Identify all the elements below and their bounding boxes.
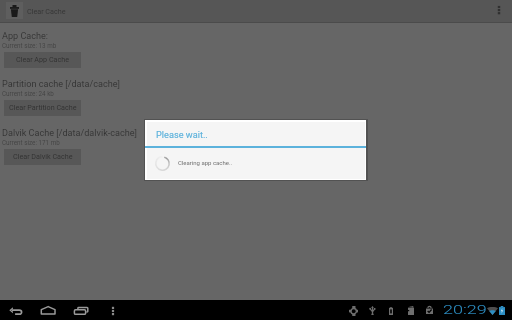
button[interactable]: Clear App Cache	[4, 52, 81, 68]
staticText: Clear Dalvik Cache	[13, 152, 73, 160]
button[interactable]: More options	[489, 1, 509, 21]
staticText: Current size: 24 kb	[2, 90, 54, 97]
staticText: Clear App Cache	[16, 55, 70, 63]
staticText: Partition cache [/data/cache]	[2, 79, 120, 90]
button[interactable]: Recents	[73, 302, 89, 318]
staticText: Please wait..	[156, 129, 208, 140]
staticText: App Cache:	[2, 31, 49, 42]
staticText: Clearing app cache..	[178, 159, 233, 166]
button[interactable]: Home	[40, 302, 56, 318]
button[interactable]: Clear Dalvik Cache	[4, 149, 81, 165]
staticText: Current size: 13 mb	[2, 42, 57, 49]
staticText: 20:29	[443, 303, 488, 317]
staticText: Dalvik Cache [/data/dalvik-cache]	[2, 128, 137, 139]
staticText: Clear Cache	[27, 7, 66, 15]
button[interactable]: Clear Partition Cache	[4, 100, 81, 116]
button[interactable]: Back	[8, 302, 24, 318]
button[interactable]: App icon	[6, 2, 23, 19]
staticText: Current size: 171 mb	[2, 139, 60, 146]
button[interactable]: Menu	[106, 304, 120, 318]
staticText: Clear Partition Cache	[9, 103, 77, 111]
